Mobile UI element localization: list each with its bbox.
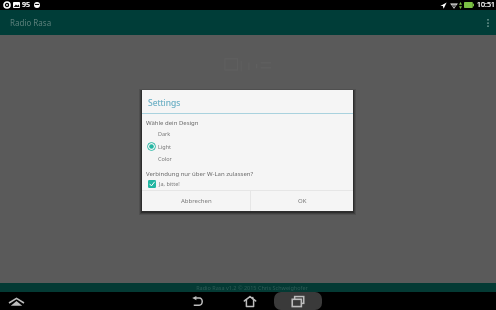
staticText: OK [298,197,307,205]
button[interactable]: Ja, bitte! [148,179,180,188]
staticText: Radio Rasa [10,17,52,28]
staticText: Abbrechen [181,197,212,205]
button[interactable]: Menu [8,297,24,306]
staticText: 95 [22,0,31,10]
button[interactable]: Home [238,292,261,310]
staticText: Dark [158,130,171,137]
button[interactable]: More options [479,10,496,35]
staticText: Radio Rasa v1.2 © 2015 Chris Schweighofe… [196,284,308,291]
button[interactable]: Abbrechen [142,191,250,211]
staticText: Settings [148,97,181,109]
button[interactable]: Dark [142,128,353,138]
staticText: Wähle dein Design [146,119,199,127]
staticText: 10:51 [477,0,495,10]
button[interactable]: Light [142,141,353,151]
button[interactable]: Color [142,153,353,163]
staticText: Light [158,143,172,150]
button[interactable]: Recents [274,292,322,310]
button[interactable]: Back [186,292,209,310]
staticText: Ja, bitte! [159,180,180,187]
staticText: Color [158,155,172,162]
button[interactable]: OK [251,191,353,211]
staticText: Verbindung nur über W-Lan zulassen? [146,170,254,178]
